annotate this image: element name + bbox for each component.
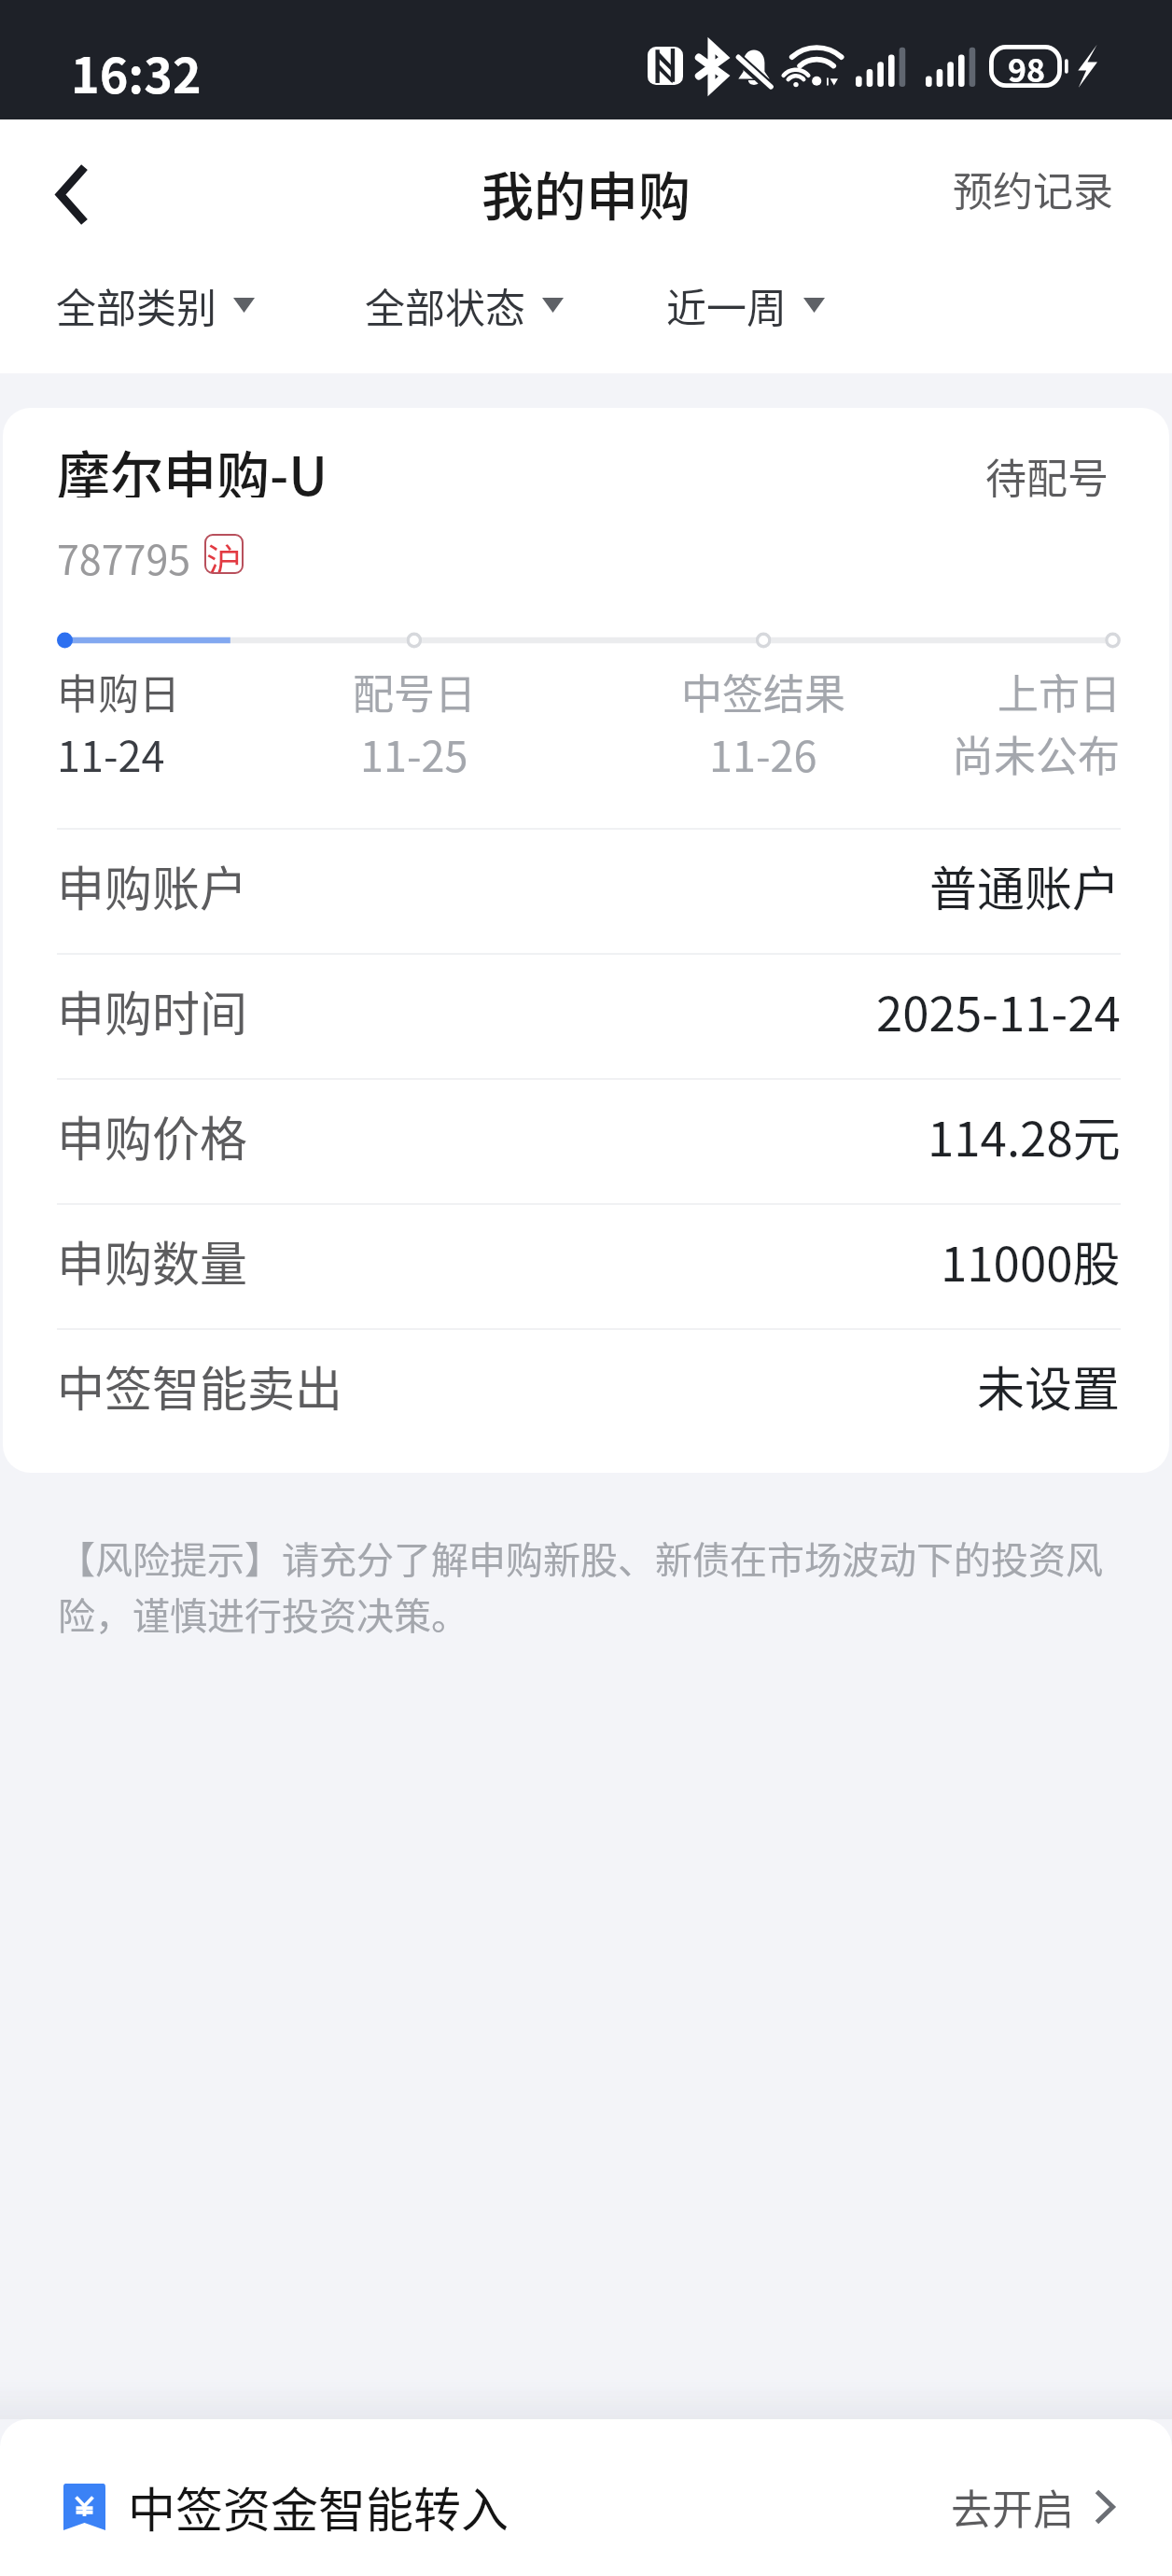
staticText: 申购价格 xyxy=(57,1101,248,1170)
button[interactable]: 全部状态 xyxy=(365,267,564,343)
staticText: 11-26 xyxy=(709,723,817,784)
staticText: 去开启 xyxy=(951,2477,1074,2537)
staticText: 申购时间 xyxy=(57,976,248,1045)
staticText: 中签结果 xyxy=(681,662,845,721)
button[interactable]: 全部类别 xyxy=(56,267,255,343)
staticText: 尚未公布 xyxy=(952,723,1121,784)
staticText: 11-24 xyxy=(57,723,165,784)
button[interactable]: 中签资金智能转入 xyxy=(0,2419,1172,2576)
button[interactable]: 近一周 xyxy=(666,267,825,343)
staticText: 摩尔申购-U xyxy=(57,434,328,497)
staticText: 2025-11-24 xyxy=(876,976,1121,1045)
staticText: 787795 xyxy=(57,528,191,579)
staticText: 申购日 xyxy=(57,662,180,721)
staticText: 中签资金智能转入 xyxy=(128,2472,509,2541)
staticText: 未设置 xyxy=(977,1351,1121,1421)
staticText: 98 xyxy=(1008,46,1046,89)
staticText: 申购数量 xyxy=(57,1226,248,1295)
staticText: 上市日 xyxy=(998,662,1121,721)
staticText: 全部类别 xyxy=(56,276,216,334)
button[interactable]: 预约记录 xyxy=(953,157,1113,215)
staticText: 配号日 xyxy=(353,662,476,721)
staticText: 16:32 xyxy=(71,37,202,107)
staticText: 全部状态 xyxy=(365,276,525,334)
staticText: 近一周 xyxy=(666,276,787,334)
staticText: 11000股 xyxy=(941,1226,1121,1295)
staticText: 11-25 xyxy=(360,723,468,784)
button[interactable]: Back xyxy=(26,149,116,239)
staticText: 预约记录 xyxy=(953,160,1113,217)
staticText: 中签智能卖出 xyxy=(57,1351,343,1421)
staticText: 我的申购 xyxy=(481,155,691,231)
staticText: 申购账户 xyxy=(57,851,248,920)
staticText: 待配号 xyxy=(985,446,1109,506)
staticText: 普通账户 xyxy=(929,851,1121,920)
staticText: 114.28元 xyxy=(928,1101,1121,1170)
staticText: 【风险提示】请充分了解申购新股、新债在市场波动下的投资风险，谨慎进行投资决策。 xyxy=(58,1531,1121,1641)
staticText: 沪 xyxy=(206,533,243,573)
